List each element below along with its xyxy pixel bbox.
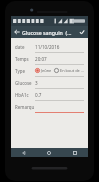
button[interactable]: Glucose [15, 77, 84, 89]
staticText: 0.7 [35, 92, 84, 98]
button[interactable]: Back [11, 148, 36, 157]
button[interactable]: HbA1c [15, 89, 84, 101]
button[interactable]: Recents [62, 148, 88, 157]
staticText: Glucose sanguin (meg… [22, 29, 76, 36]
staticText: date [15, 44, 35, 50]
staticText: Remarque [15, 104, 35, 110]
staticText: Glucose [15, 80, 35, 86]
staticText: 20:07 [35, 56, 84, 62]
button[interactable]: Save [76, 26, 88, 38]
staticText: HbA1c [15, 92, 35, 98]
button[interactable]: Back [11, 26, 22, 38]
button[interactable]: Remarque [15, 101, 84, 113]
button[interactable]: Temps [15, 53, 84, 65]
staticText: Type [15, 68, 35, 74]
staticText: En bout de manger [60, 68, 84, 73]
staticText: Jeûne [41, 68, 52, 73]
button[interactable]: Home [36, 148, 62, 157]
staticText: Temps [15, 56, 35, 62]
button[interactable]: date [15, 41, 84, 53]
staticText: 11/10/2016 [35, 44, 84, 50]
button[interactable]: Type [15, 65, 84, 77]
staticText: 3 [35, 80, 84, 86]
